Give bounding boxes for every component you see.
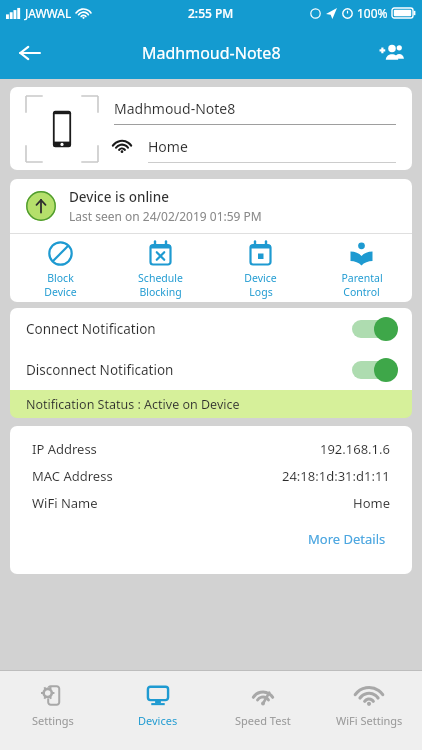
staticText: Disconnect Notification (26, 361, 174, 379)
staticText: Speed Test (235, 713, 291, 728)
staticText: 100% (357, 5, 388, 21)
button[interactable]: Devices (105, 671, 210, 750)
staticText: Connect Notification (26, 320, 156, 338)
staticText: Blocking (139, 285, 182, 299)
staticText: Parental (341, 271, 383, 285)
staticText: WiFi Name (32, 494, 98, 512)
staticText: MAC Address (32, 467, 113, 485)
staticText: Settings (32, 713, 74, 728)
button[interactable]: WiFi Settings (316, 671, 422, 750)
staticText: Devices (138, 713, 178, 728)
staticText: Block (47, 271, 74, 285)
staticText: Madhmoud-Note8 (142, 42, 281, 64)
staticText: JAWWAL (25, 5, 72, 21)
staticText: IP Address (32, 440, 97, 458)
staticText: WiFi Settings (336, 713, 403, 728)
staticText: Control (343, 285, 380, 299)
staticText: Device (44, 285, 77, 299)
button[interactable]: Schedule (110, 234, 210, 302)
button[interactable]: Settings (0, 671, 105, 750)
button[interactable]: Speed Test (210, 671, 316, 750)
staticText: Madhmoud-Note8 (114, 99, 236, 118)
button[interactable]: Connect Notification (10, 308, 412, 349)
button[interactable]: More Details (304, 526, 390, 552)
button[interactable]: Disconnect Notification (10, 349, 412, 390)
staticText: Logs (249, 285, 273, 299)
staticText: More Details (308, 530, 386, 548)
staticText: Home (148, 137, 188, 156)
button[interactable]: Add device (370, 31, 414, 75)
staticText: 192.168.1.6 (320, 440, 390, 458)
staticText: Schedule (138, 271, 183, 285)
button[interactable]: Device (210, 234, 311, 302)
staticText: 2:55 PM (188, 5, 234, 21)
staticText: 24:18:1d:31:d1:11 (282, 467, 390, 485)
button[interactable]: Block (10, 234, 110, 302)
button[interactable]: Parental (311, 234, 412, 302)
staticText: Notification Status : Active on Device (26, 396, 240, 413)
staticText: Device is online (69, 188, 169, 206)
staticText: Home (353, 494, 390, 512)
button[interactable]: Back (8, 31, 52, 75)
staticText: Last seen on 24/02/2019 01:59 PM (69, 208, 262, 224)
staticText: Device (244, 271, 277, 285)
